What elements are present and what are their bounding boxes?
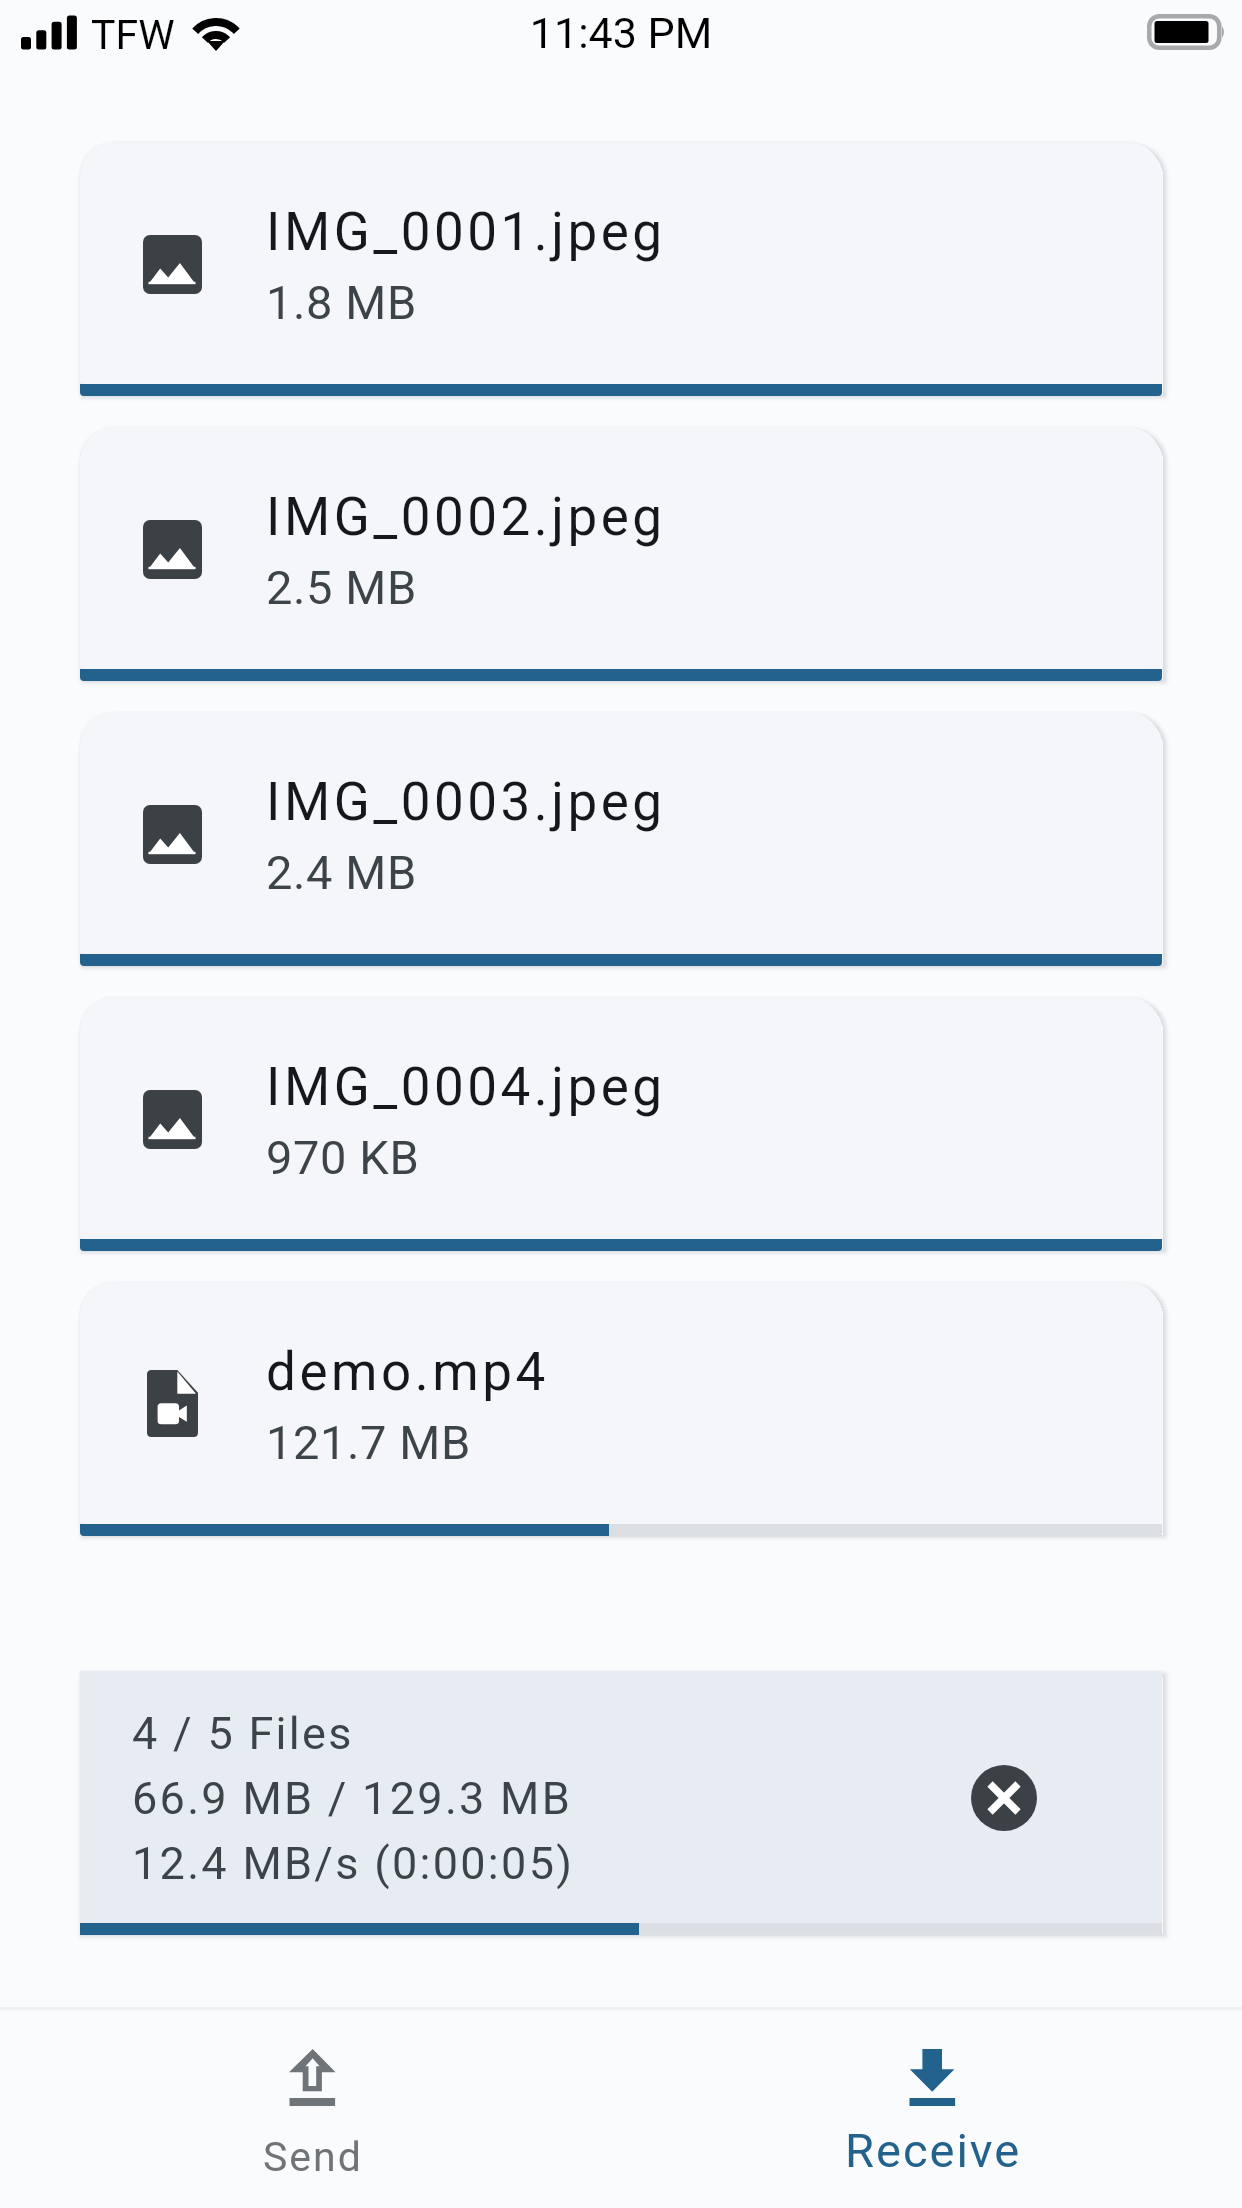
staticText: 2.4 MB — [266, 845, 417, 900]
staticText: Receive — [845, 2123, 1022, 2178]
staticText: 2.5 MB — [266, 560, 417, 615]
staticText: IMG_0004.jpeg — [266, 1056, 666, 1118]
staticText: Send — [263, 2133, 363, 2181]
staticText: 121.7 MB — [266, 1415, 471, 1470]
staticText: 970 KB — [266, 1130, 420, 1185]
staticText: IMG_0003.jpeg — [266, 771, 666, 833]
staticText: 66.9 MB / 129.3 MB — [132, 1772, 573, 1825]
staticText: 11:43 PM — [0, 8, 1242, 58]
button[interactable]: Send — [0, 2010, 621, 2208]
staticText: IMG_0001.jpeg — [266, 201, 666, 263]
button[interactable]: Cancel transfer — [971, 1765, 1037, 1831]
button[interactable]: IMG_0004.jpeg — [80, 997, 1162, 1251]
button[interactable]: IMG_0003.jpeg — [80, 712, 1162, 966]
staticText: IMG_0002.jpeg — [266, 486, 666, 548]
button[interactable]: Receive — [621, 2010, 1242, 2208]
button[interactable]: IMG_0002.jpeg — [80, 427, 1162, 681]
staticText: 4 / 5 Files — [132, 1707, 354, 1760]
staticText: 12.4 MB/s (0:00:05) — [132, 1837, 575, 1890]
staticText: demo.mp4 — [266, 1341, 549, 1403]
button[interactable]: IMG_0001.jpeg — [80, 142, 1162, 396]
button[interactable]: demo.mp4 — [80, 1282, 1162, 1536]
staticText: 1.8 MB — [266, 275, 417, 330]
staticText: TFW — [91, 11, 175, 59]
